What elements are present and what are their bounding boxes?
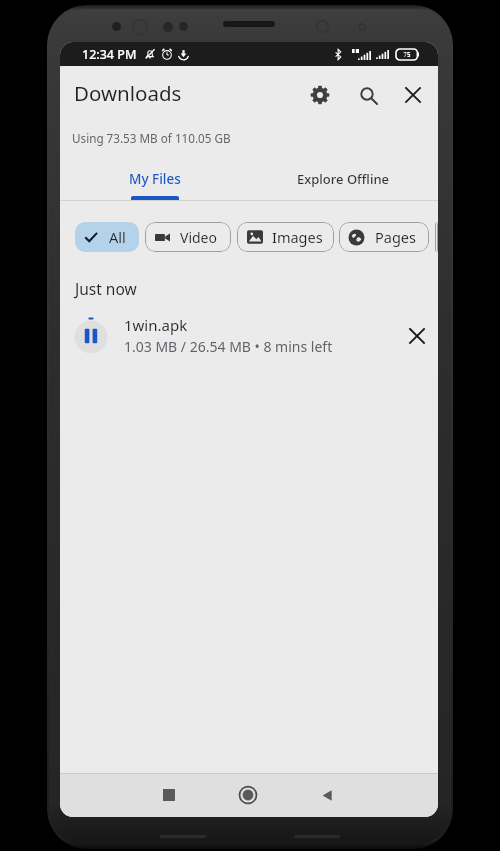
staticText: Just now: [75, 278, 137, 299]
button[interactable]: Settings: [300, 75, 340, 115]
button[interactable]: Search: [348, 75, 388, 115]
staticText: Using 73.53 MB of 110.05 GB: [72, 130, 231, 146]
staticText: 12:34 PM: [82, 46, 137, 63]
staticText: 1.03 MB / 26.54 MB • 8 mins left: [124, 337, 333, 356]
button[interactable]: Pages: [339, 222, 429, 252]
staticText: All: [109, 227, 126, 247]
button[interactable]: All: [75, 222, 139, 252]
staticText: Video: [180, 228, 217, 247]
button[interactable]: Back: [307, 775, 347, 815]
button[interactable]: Images: [237, 222, 334, 252]
staticText: Explore Offline: [297, 170, 390, 188]
button[interactable]: Apps: [435, 222, 438, 252]
button[interactable]: Recents: [149, 775, 189, 815]
staticText: 1win.apk: [124, 315, 188, 335]
button[interactable]: Cancel download: [397, 316, 437, 356]
staticText: Downloads: [74, 79, 182, 107]
button[interactable]: Home: [228, 775, 268, 815]
button[interactable]: Explore Offline: [249, 155, 438, 200]
staticText: Images: [272, 227, 323, 247]
staticText: Pages: [375, 227, 416, 247]
button[interactable]: Close: [393, 75, 433, 115]
staticText: My Files: [129, 170, 181, 188]
button[interactable]: Video: [145, 222, 231, 252]
button[interactable]: 1win.apk: [60, 308, 438, 363]
button[interactable]: My Files: [60, 155, 249, 200]
